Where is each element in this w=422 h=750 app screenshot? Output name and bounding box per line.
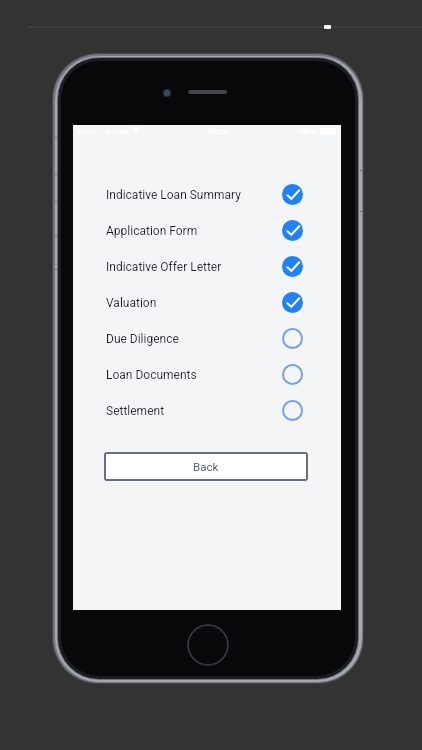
staticText: Due Diligence	[106, 332, 179, 346]
button[interactable]: Valuation	[73, 284, 341, 320]
staticText: Loan Documents	[106, 368, 197, 382]
button[interactable]: Due Diligence	[73, 320, 341, 356]
button[interactable]: Settlement	[73, 392, 341, 428]
other: Completed	[282, 292, 303, 313]
button[interactable]: Loan Documents	[73, 356, 341, 392]
other: Not completed	[282, 328, 303, 349]
staticText: 10:58	[208, 127, 229, 136]
button[interactable]: Application Form	[73, 212, 341, 248]
staticText: Valuation	[106, 296, 157, 310]
button[interactable]: Home	[187, 624, 229, 666]
button[interactable]: Indicative Offer Letter	[73, 248, 341, 284]
other: Completed	[282, 256, 303, 277]
staticText: Carrier	[105, 127, 130, 136]
other: Not completed	[282, 400, 303, 421]
staticText: 100%	[297, 127, 317, 136]
button[interactable]: Indicative Loan Summary	[73, 176, 341, 212]
other: Completed	[282, 220, 303, 241]
staticText: Settlement	[106, 404, 165, 418]
staticText: Back	[193, 460, 219, 473]
staticText: Indicative Offer Letter	[106, 260, 222, 274]
staticText: Indicative Loan Summary	[106, 188, 241, 202]
other: Completed	[282, 184, 303, 205]
other: Not completed	[282, 364, 303, 385]
button[interactable]: Back	[104, 452, 308, 481]
staticText: Application Form	[106, 224, 198, 238]
